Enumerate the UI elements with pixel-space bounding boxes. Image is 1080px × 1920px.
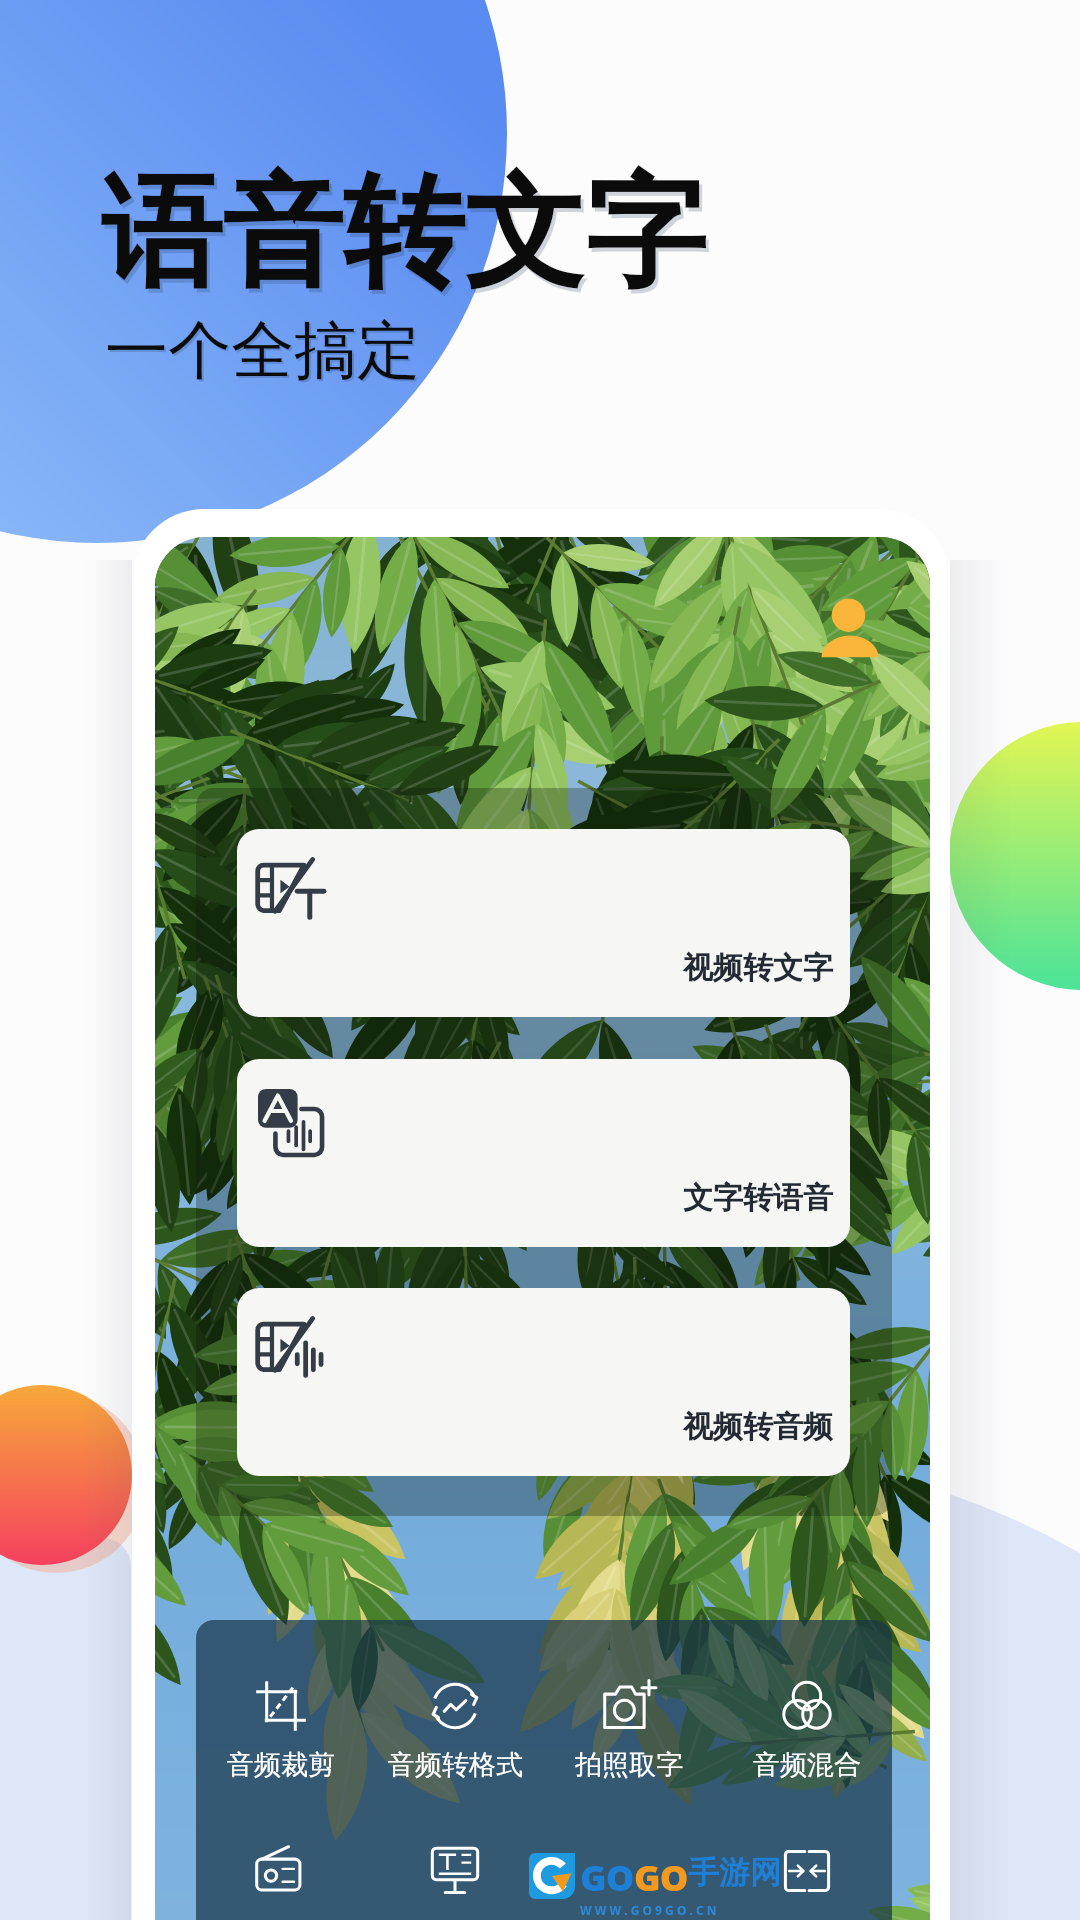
button[interactable]: Audio mix (721, 1679, 893, 1782)
button[interactable]: Audio format convert (369, 1679, 541, 1782)
staticText: 一个全搞定 (105, 311, 420, 390)
button[interactable]: Screen text (369, 1844, 541, 1898)
staticText: 视频转音频 (683, 1408, 833, 1446)
button[interactable]: 文字转语音 (237, 1059, 850, 1247)
staticText: GO (634, 1853, 688, 1902)
staticText: GO (580, 1853, 634, 1902)
button[interactable]: Photo to text (543, 1679, 715, 1782)
other: Photo to text (602, 1679, 656, 1733)
staticText: 文字转语音 (683, 1179, 833, 1217)
staticText: 手游网 (688, 1853, 781, 1892)
button[interactable]: Audio crop (195, 1679, 367, 1782)
other: Screen text (428, 1844, 482, 1898)
button[interactable]: 视频转文字 (237, 829, 850, 1017)
staticText: 拍照取字 (575, 1748, 683, 1782)
staticText: 音频混合 (753, 1748, 861, 1782)
button[interactable]: Profile (815, 595, 877, 657)
staticText: 语音转文字 (104, 161, 709, 313)
other: Audio format convert (428, 1679, 482, 1733)
button[interactable]: Merge (721, 1844, 893, 1898)
other: Audio crop (254, 1679, 308, 1733)
button[interactable]: Radio (195, 1844, 367, 1898)
staticText: 语音转文字 (101, 157, 706, 309)
staticText: W W W . G O 9 G O . C N (580, 1902, 717, 1918)
staticText: 视频转文字 (683, 949, 833, 987)
staticText: 一个全搞定 (107, 313, 422, 392)
other: Merge (780, 1844, 834, 1898)
button[interactable]: 视频转音频 (237, 1288, 850, 1476)
staticText: 音频转格式 (388, 1748, 523, 1782)
other: Radio (254, 1844, 308, 1898)
other: Audio mix (780, 1679, 834, 1733)
staticText: 音频裁剪 (227, 1748, 335, 1782)
